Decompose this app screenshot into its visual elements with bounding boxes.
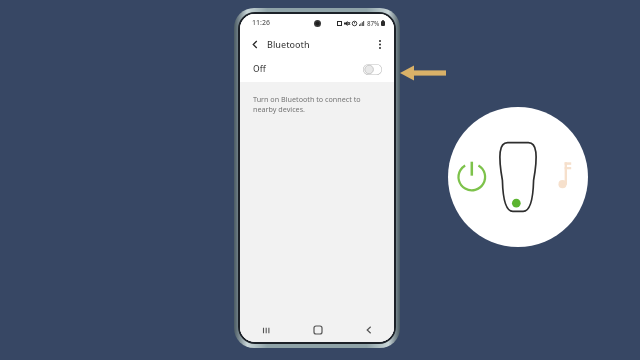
button[interactable]: Recent apps (240, 318, 292, 342)
staticText: Off (253, 63, 266, 75)
staticText: Turn on Bluetooth to connect to nearby d… (253, 94, 376, 114)
staticText: 87% (367, 19, 380, 27)
button[interactable]: More options (371, 35, 389, 53)
staticText: 11:26 (252, 18, 270, 28)
button[interactable]: Home (292, 318, 343, 342)
button[interactable]: Back (246, 35, 264, 53)
staticText: Bluetooth (267, 38, 310, 50)
button[interactable]: Off (240, 56, 394, 82)
button[interactable]: Back (343, 318, 394, 342)
